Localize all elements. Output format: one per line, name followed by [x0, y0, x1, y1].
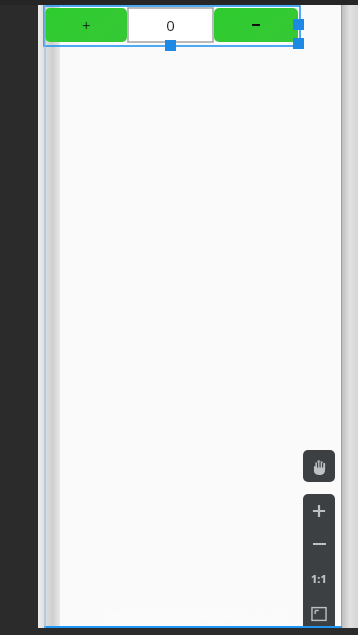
- button[interactable]: 1:1: [303, 560, 335, 596]
- button[interactable]: Zoom out: [303, 528, 335, 560]
- button[interactable]: Pan tool: [303, 450, 335, 482]
- button[interactable]: [214, 8, 298, 42]
- button[interactable]: +: [45, 8, 127, 42]
- button[interactable]: Fit to screen: [303, 596, 335, 632]
- button[interactable]: Zoom in: [303, 494, 335, 528]
- staticText: 1:1: [311, 571, 327, 586]
- staticText: +: [82, 15, 91, 35]
- button[interactable]: 0: [128, 8, 213, 42]
- staticText: 0: [166, 15, 175, 35]
